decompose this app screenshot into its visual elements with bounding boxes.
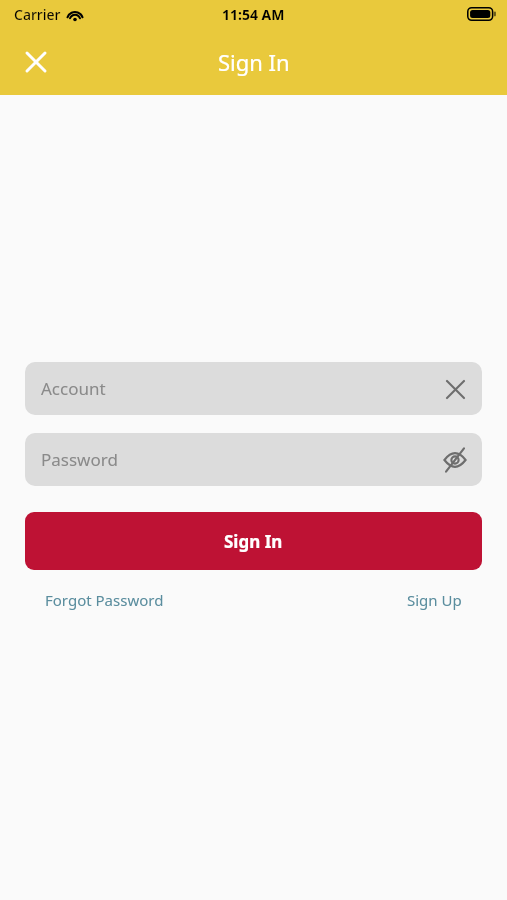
staticText: 11:54 AM [222, 5, 285, 24]
button[interactable]: Forgot Password [25, 584, 184, 616]
staticText: Sign In [218, 47, 290, 77]
staticText: Carrier [14, 5, 61, 24]
staticText: Sign In [224, 530, 283, 553]
staticText: Password [41, 448, 433, 471]
button[interactable]: Password [25, 433, 482, 486]
button[interactable]: Account [25, 362, 482, 415]
button[interactable]: Sign Up [387, 584, 482, 616]
button[interactable]: Sign In [25, 512, 482, 570]
button[interactable]: Clear account [433, 367, 477, 411]
staticText: Forgot Password [45, 590, 164, 610]
staticText: Sign Up [407, 590, 462, 610]
button[interactable]: Close [12, 38, 60, 86]
button[interactable]: Show password [433, 438, 477, 482]
staticText: Account [41, 377, 433, 400]
